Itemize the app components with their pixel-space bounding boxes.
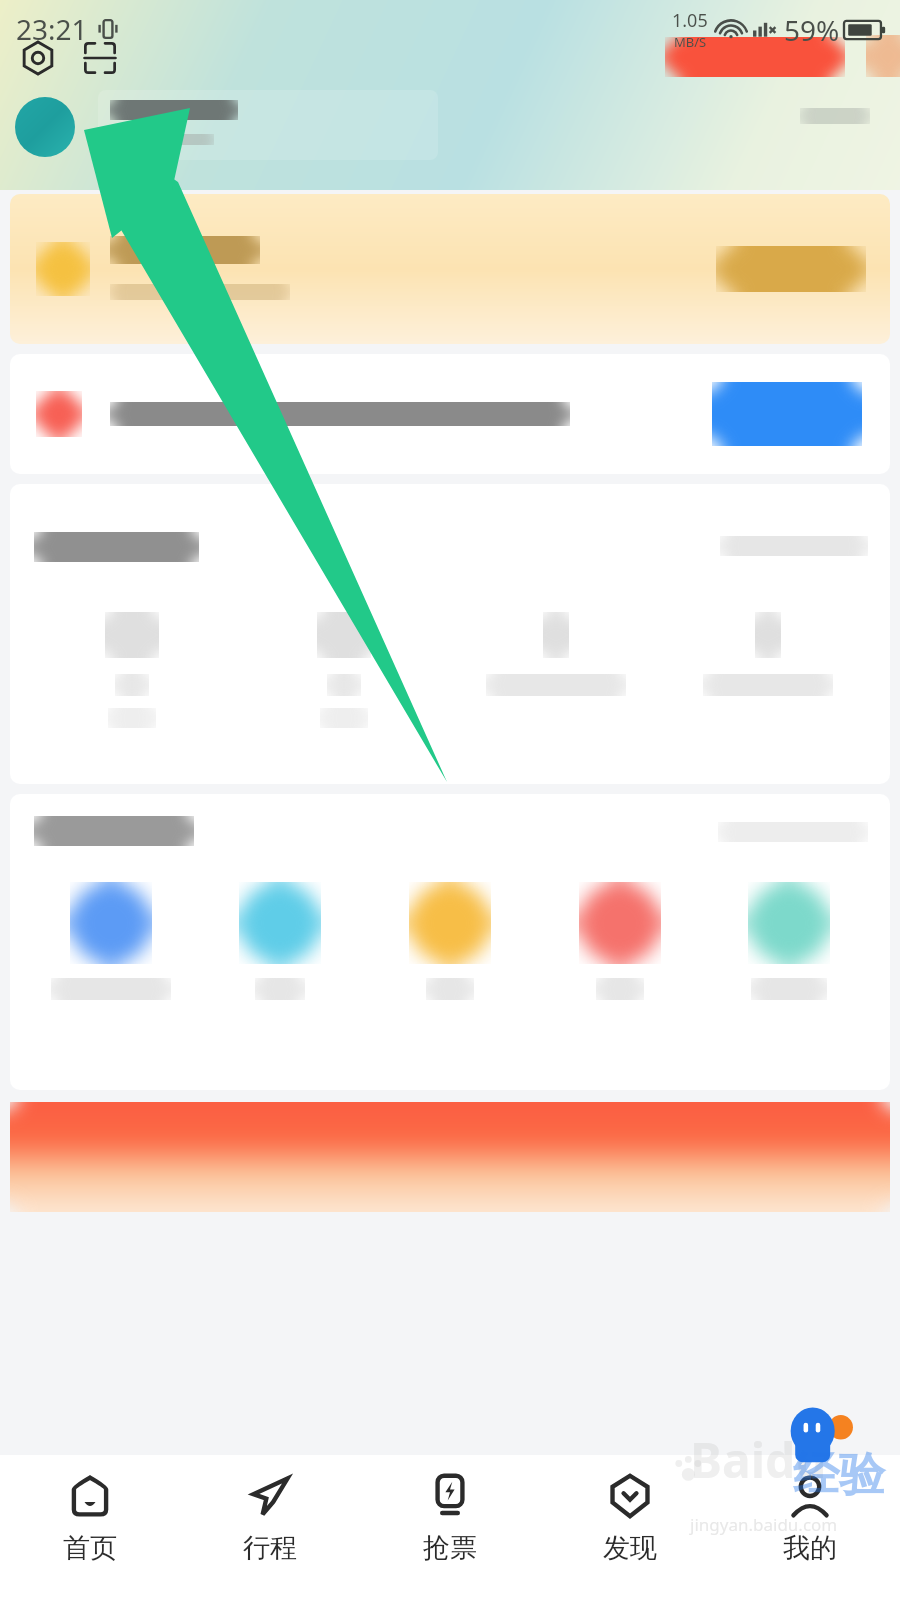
staticText: 经验 <box>793 1446 885 1504</box>
staticText: 首页 <box>63 1531 117 1565</box>
staticText: Baidu <box>690 1427 827 1492</box>
button[interactable]: 行程 <box>180 1455 360 1600</box>
staticText: 发现 <box>603 1531 657 1565</box>
button[interactable]: Service <box>466 612 646 708</box>
button[interactable]: Category <box>375 882 525 1000</box>
button[interactable]: Category <box>205 882 355 1000</box>
button[interactable]: Category <box>545 882 695 1000</box>
button[interactable]: Settings <box>16 36 60 80</box>
button[interactable]: Service <box>678 612 858 708</box>
button[interactable]: 我的 <box>720 1455 900 1600</box>
button[interactable]: Scan <box>78 36 122 80</box>
staticText: MB/S <box>674 33 707 51</box>
staticText: 59% <box>784 11 840 49</box>
staticText: 23:21 <box>16 10 88 48</box>
button[interactable]: 发现 <box>540 1455 720 1600</box>
button[interactable] <box>98 90 438 160</box>
staticText: jingyan.baidu.com <box>690 1513 838 1536</box>
button[interactable]: Service <box>42 612 222 728</box>
staticText: 抢票 <box>423 1531 477 1565</box>
button[interactable]: Action <box>712 382 862 446</box>
staticText: 行程 <box>243 1531 297 1565</box>
button[interactable]: Promotion <box>665 37 845 77</box>
button[interactable]: Service <box>254 612 434 728</box>
staticText: 1.05 <box>672 8 708 33</box>
button[interactable]: 首页 <box>0 1455 180 1600</box>
staticText: 我的 <box>783 1531 837 1565</box>
button[interactable]: Banner <box>10 1102 890 1212</box>
button[interactable]: Avatar <box>15 97 75 157</box>
button[interactable]: 抢票 <box>360 1455 540 1600</box>
button[interactable]: Action <box>10 354 890 474</box>
button[interactable]: Category <box>36 882 186 1000</box>
button[interactable]: Category <box>714 882 864 1000</box>
button[interactable] <box>10 194 890 344</box>
